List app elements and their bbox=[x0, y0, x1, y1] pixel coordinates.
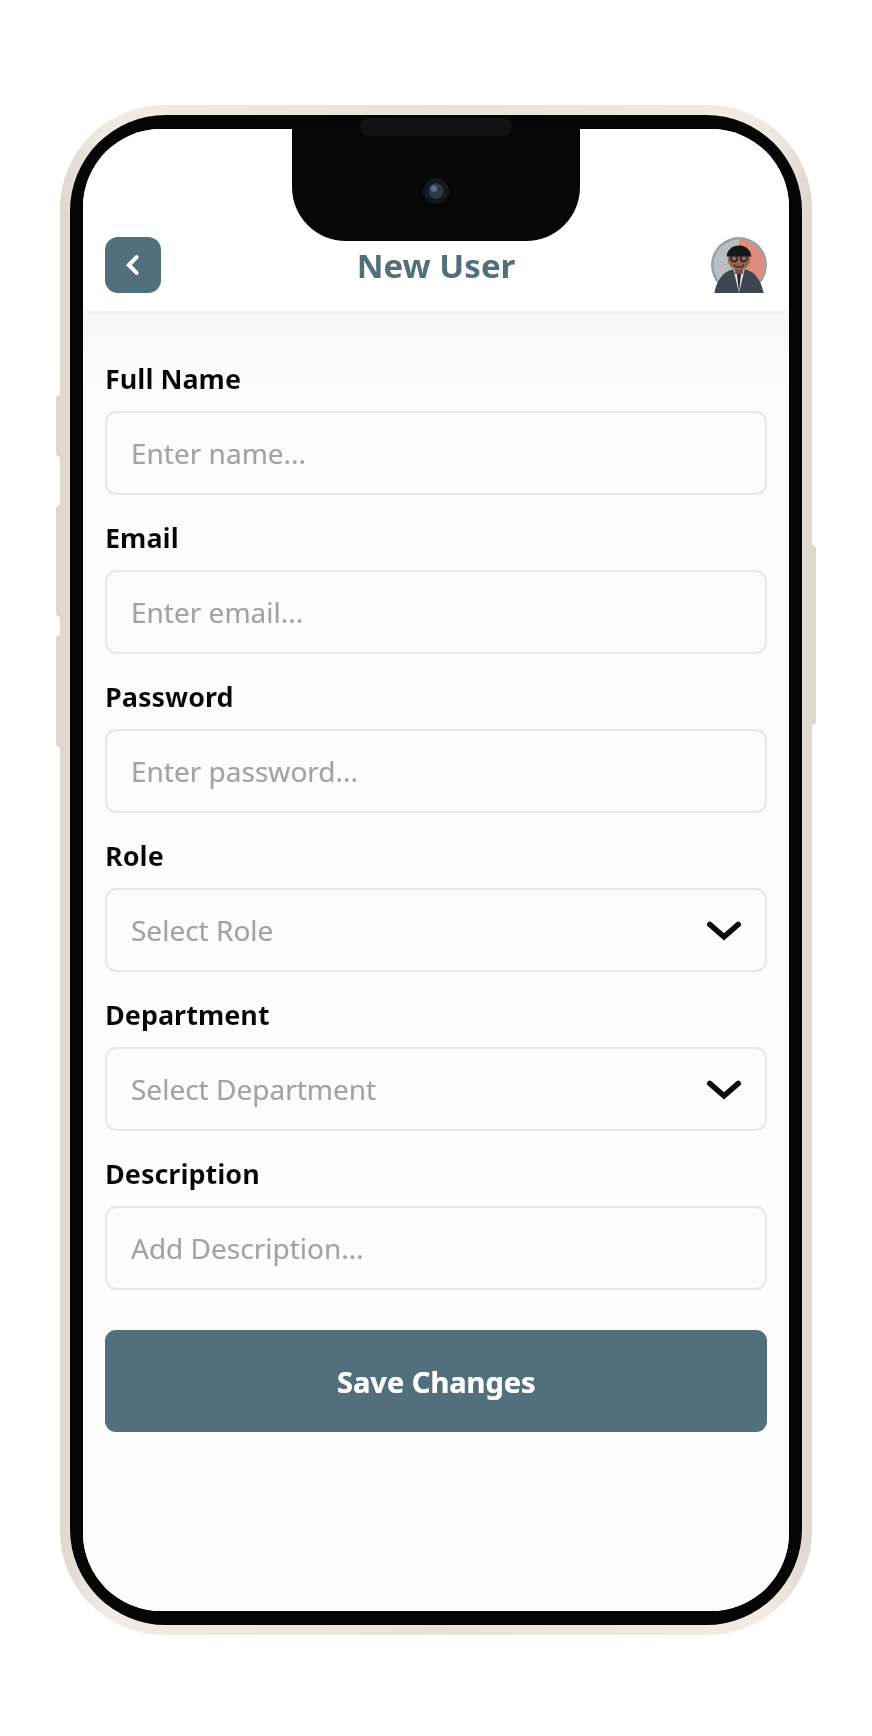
staticText: Add Description... bbox=[131, 1229, 741, 1267]
staticText: Save Changes bbox=[337, 1362, 536, 1401]
staticText: Enter name... bbox=[131, 434, 741, 472]
button[interactable]: Add Description... bbox=[105, 1206, 767, 1290]
button[interactable]: Enter password... bbox=[105, 729, 767, 813]
button[interactable]: Back bbox=[105, 237, 161, 293]
button[interactable]: Enter email... bbox=[105, 570, 767, 654]
staticText: New User bbox=[161, 243, 711, 288]
staticText: Department bbox=[105, 996, 270, 1033]
staticText: Select Role bbox=[131, 911, 707, 949]
staticText: Email bbox=[105, 519, 179, 556]
staticText: Full Name bbox=[105, 360, 242, 397]
button[interactable]: Enter name... bbox=[105, 411, 767, 495]
staticText: Enter email... bbox=[131, 593, 741, 631]
staticText: Role bbox=[105, 837, 164, 874]
button[interactable]: Profile bbox=[711, 237, 767, 293]
staticText: Enter password... bbox=[131, 752, 741, 790]
button[interactable]: Save Changes bbox=[105, 1330, 767, 1432]
button[interactable]: Select Department bbox=[105, 1047, 767, 1131]
staticText: Password bbox=[105, 678, 234, 715]
staticText: Description bbox=[105, 1155, 260, 1192]
button[interactable]: Select Role bbox=[105, 888, 767, 972]
staticText: Select Department bbox=[131, 1070, 707, 1108]
